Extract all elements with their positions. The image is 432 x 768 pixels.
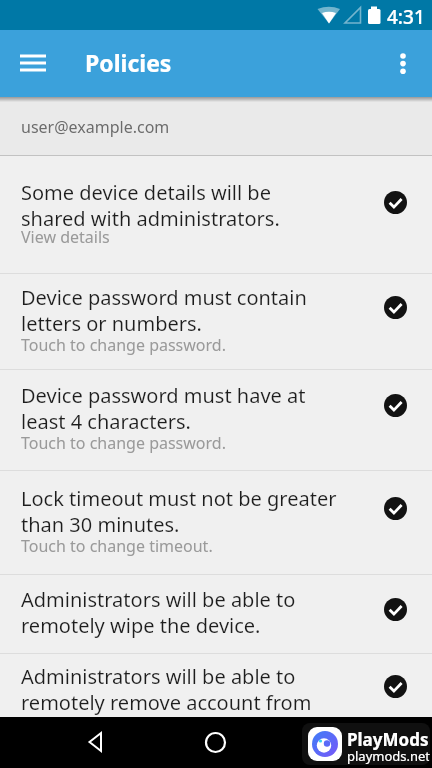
staticText: Lock timeout must not be greater than 30… xyxy=(21,485,337,537)
staticText: Some device details will be shared with … xyxy=(21,179,280,231)
staticText: Policies xyxy=(85,47,172,78)
staticText: Touch to change password. xyxy=(21,432,226,454)
staticText: user@example.com xyxy=(21,116,170,138)
staticText: Device password must contain letters or … xyxy=(21,284,307,336)
button[interactable]: PlayMods xyxy=(302,723,430,765)
staticText: PlayMods xyxy=(347,728,429,751)
button[interactable]: Some device details will be shared with … xyxy=(0,156,432,274)
staticText: Touch to change password. xyxy=(21,334,226,356)
staticText: Touch to change timeout. xyxy=(21,535,213,557)
staticText: playmods.net xyxy=(347,747,430,765)
button[interactable] xyxy=(9,39,57,87)
button[interactable] xyxy=(73,720,117,764)
staticText: Administrators will be able to remotely … xyxy=(21,663,312,715)
staticText: Administrators will be able to remotely … xyxy=(21,586,296,638)
button[interactable]: Administrators will be able to remotely … xyxy=(0,654,432,717)
button[interactable]: Device password must contain letters or … xyxy=(0,274,432,370)
button[interactable]: Lock timeout must not be greater than 30… xyxy=(0,471,432,575)
button[interactable]: Administrators will be able to remotely … xyxy=(0,575,432,654)
staticText: View details xyxy=(21,226,110,248)
staticText: Device password must have at least 4 cha… xyxy=(21,382,306,434)
button[interactable]: Device password must have at least 4 cha… xyxy=(0,370,432,471)
button[interactable] xyxy=(381,41,425,85)
button[interactable] xyxy=(193,720,237,764)
staticText: 4:31 xyxy=(387,4,425,30)
